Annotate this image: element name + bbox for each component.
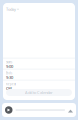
staticText: Starts	[6, 60, 12, 64]
staticText: 9:00	[6, 64, 13, 69]
button[interactable]: Add to Calendar	[6, 89, 72, 96]
staticText: Ends	[6, 71, 12, 75]
button[interactable]: AirPlay	[68, 107, 73, 112]
staticText: Today	[6, 6, 16, 12]
button[interactable]: Play	[5, 106, 12, 114]
staticText: Repeat	[6, 82, 16, 86]
staticText: Off	[6, 86, 12, 91]
staticText: Add to Calendar	[25, 90, 53, 95]
staticText: 9:30	[6, 75, 13, 80]
